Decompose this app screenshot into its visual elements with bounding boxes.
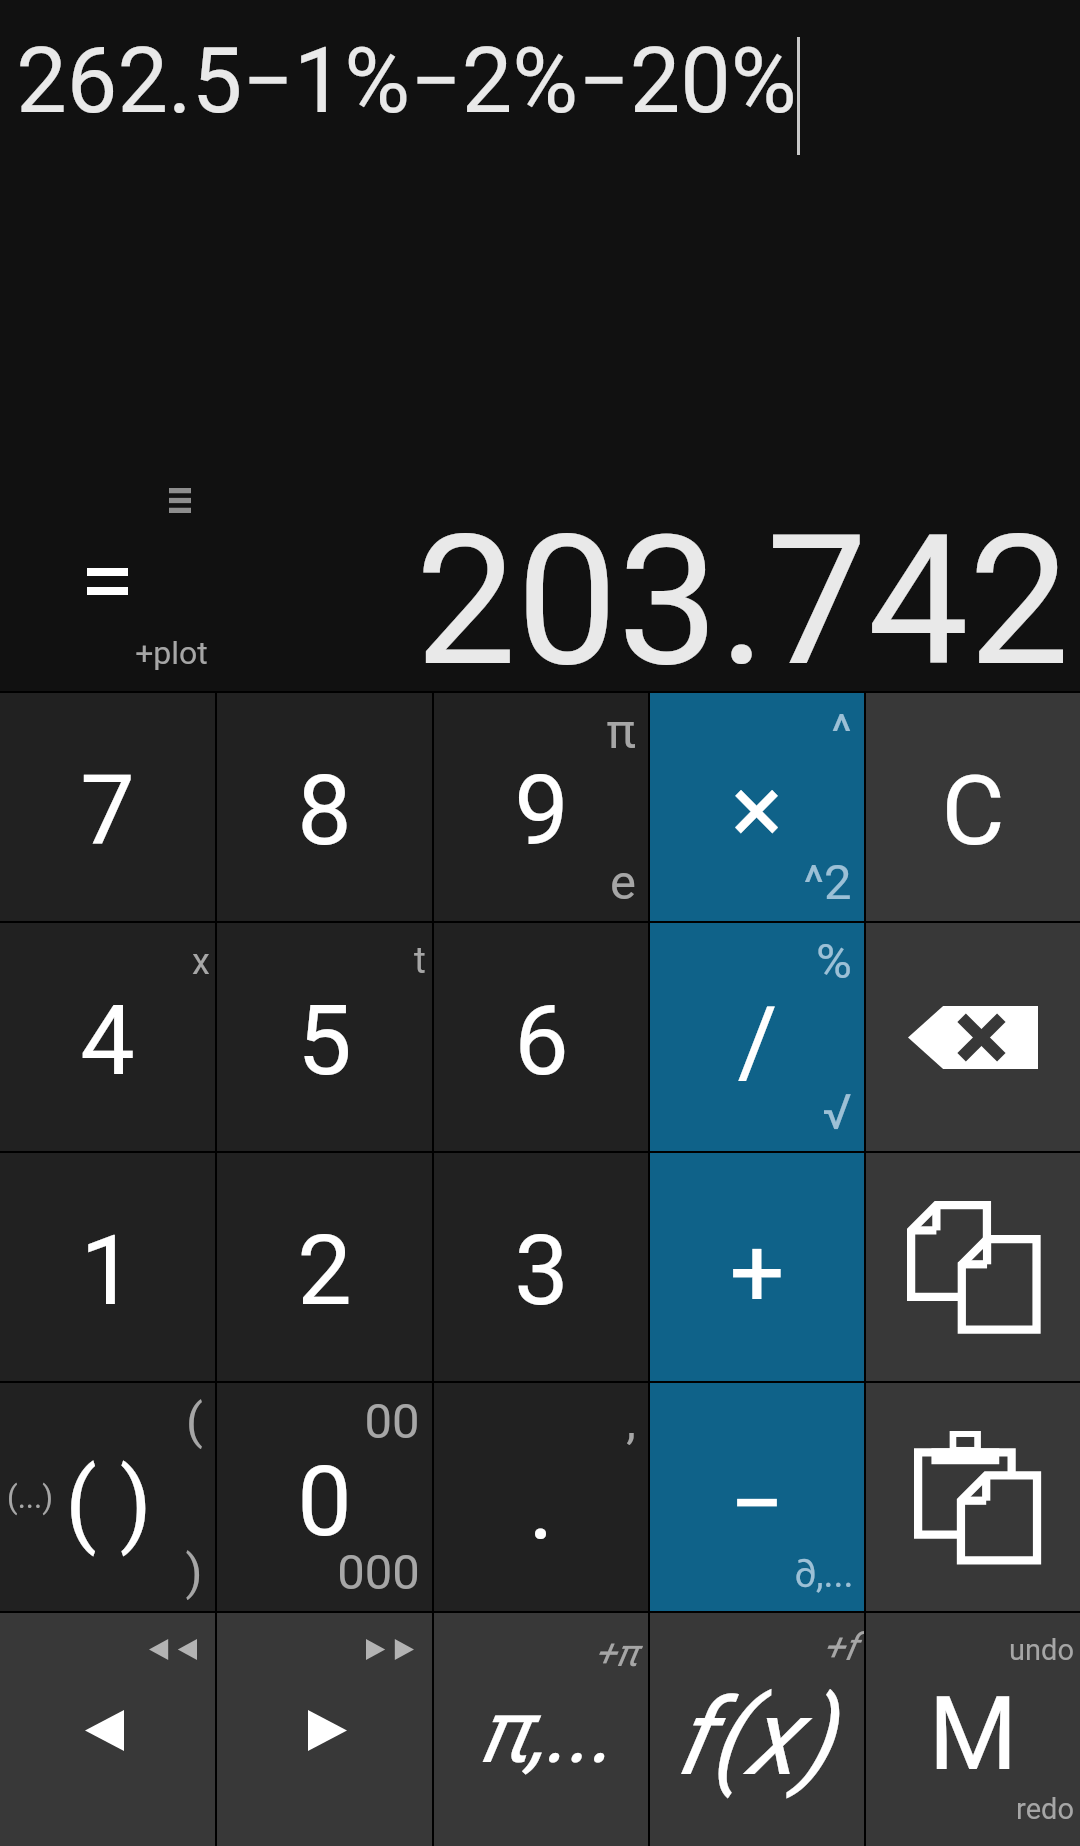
button[interactable]: . [434, 1383, 648, 1611]
button[interactable]: M [866, 1613, 1080, 1846]
staticText: ( ) [65, 1450, 152, 1558]
staticText: ∂,... [794, 1552, 854, 1597]
button[interactable]: Cursor left [0, 1613, 215, 1846]
button[interactable]: 4 [0, 923, 215, 1151]
staticText: + [729, 1216, 785, 1330]
staticText: +π [595, 1631, 638, 1676]
staticText: 8 [297, 754, 352, 868]
staticText: 1 [80, 1214, 135, 1328]
staticText: M [928, 1674, 1018, 1794]
button[interactable]: +plot [126, 626, 218, 678]
staticText: ) [185, 1544, 203, 1601]
staticText: redo [1016, 1792, 1074, 1826]
staticText: 262.5−1%−2%−20% [16, 29, 797, 134]
staticText: 0 [297, 1445, 352, 1559]
staticText: 4 [80, 984, 135, 1098]
staticText: 3 [514, 1214, 569, 1328]
button[interactable]: 6 [434, 923, 648, 1151]
button[interactable]: Backspace [866, 923, 1080, 1151]
button[interactable]: 0 [217, 1383, 432, 1611]
staticText: 00 [364, 1393, 420, 1450]
staticText: π [606, 703, 636, 760]
staticText: . [528, 1448, 554, 1562]
staticText: √ [822, 1084, 852, 1141]
staticText: f(x) [675, 1676, 833, 1800]
staticText: 203.742 [415, 496, 1070, 696]
button[interactable]: − [650, 1383, 864, 1611]
staticText: , [626, 1393, 636, 1450]
button[interactable]: C [866, 693, 1080, 921]
button[interactable]: 5 [217, 923, 432, 1151]
staticText: e [610, 854, 636, 911]
button[interactable]: 1 [0, 1153, 215, 1381]
staticText: 6 [514, 984, 569, 1098]
button[interactable]: / [650, 923, 864, 1151]
staticText: 000 [337, 1544, 420, 1601]
button[interactable]: Copy [866, 1153, 1080, 1381]
button[interactable]: 9 [434, 693, 648, 921]
staticText: (...) [7, 1479, 53, 1515]
button[interactable]: 8 [217, 693, 432, 921]
staticText: +plot [135, 634, 208, 672]
button[interactable]: Cursor right [217, 1613, 432, 1846]
staticText: undo [1009, 1633, 1074, 1667]
staticText: +f [823, 1625, 857, 1670]
button[interactable]: Equals [47, 536, 168, 626]
staticText: ^2 [803, 854, 852, 911]
staticText: C [941, 754, 1005, 868]
button[interactable]: ( ) [0, 1383, 215, 1611]
button[interactable]: Expression input [0, 0, 1080, 460]
staticText: % [816, 933, 852, 990]
button[interactable]: 7 [0, 693, 215, 921]
staticText: ( [186, 1393, 203, 1450]
staticText: / [737, 985, 778, 1099]
button[interactable]: π,... [434, 1613, 648, 1846]
staticText: − [729, 1447, 785, 1561]
button[interactable]: Menu [150, 466, 212, 536]
staticText: 2 [297, 1214, 352, 1328]
button[interactable]: Result 203.742 [400, 481, 1080, 681]
staticText: ^ [831, 703, 852, 760]
staticText: 7 [80, 754, 135, 868]
staticText: x [192, 941, 210, 983]
button[interactable]: f(x) [650, 1613, 864, 1846]
button[interactable]: 2 [217, 1153, 432, 1381]
staticText: × [731, 753, 783, 867]
button[interactable]: Paste [866, 1383, 1080, 1611]
button[interactable]: 3 [434, 1153, 648, 1381]
staticText: 9 [514, 754, 569, 868]
staticText: 5 [297, 984, 352, 1098]
staticText: π,... [478, 1680, 614, 1783]
staticText: t [414, 940, 426, 982]
button[interactable]: + [650, 1153, 864, 1381]
button[interactable]: × [650, 693, 864, 921]
